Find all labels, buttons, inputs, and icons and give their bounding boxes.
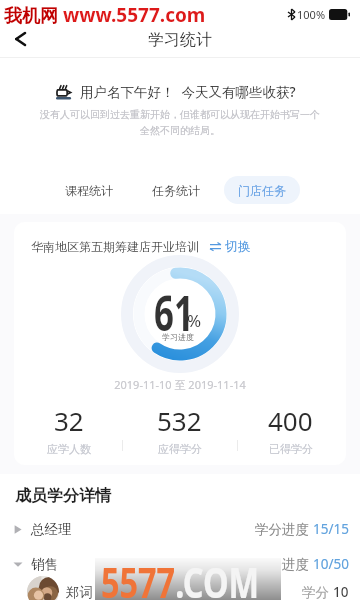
staticText: 32 xyxy=(54,403,84,438)
button[interactable]: 销售 xyxy=(0,551,360,577)
staticText: 没有人可以回到过去重新开始，但谁都可以从现在开始书写一个 全然不同的结局。 xyxy=(0,108,360,137)
staticText: 61 xyxy=(154,279,194,346)
staticText: 用户名下午好！ 今天又有哪些收获? xyxy=(80,83,296,101)
button[interactable]: 课程统计 xyxy=(65,176,113,204)
staticText: 学习进度 xyxy=(162,332,194,342)
staticText: 学分进度 xyxy=(255,520,313,538)
staticText: 任务统计 xyxy=(152,183,200,198)
button[interactable]: 郑词 xyxy=(0,575,360,600)
staticText: 郑词 xyxy=(66,584,93,600)
staticText: 已得学分 xyxy=(269,442,313,456)
button[interactable]: 400 xyxy=(235,403,346,456)
staticText: 2019-11-10 至 2019-11-14 xyxy=(14,377,346,392)
staticText: 成员学分详情 xyxy=(15,486,111,506)
staticText: 应得学分 xyxy=(158,442,202,456)
button[interactable]: Back xyxy=(4,28,38,57)
staticText: % xyxy=(187,309,202,332)
staticText: 我机网 xyxy=(4,3,63,28)
staticText: 15/15 xyxy=(313,520,349,538)
staticText: 学分进度 xyxy=(255,555,313,573)
button[interactable]: 门店任务 xyxy=(224,176,300,204)
staticText: 华南地区第五期筹建店开业培训 xyxy=(31,239,199,254)
button[interactable]: 532 xyxy=(124,403,235,456)
staticText: 总经理 xyxy=(31,521,72,538)
staticText: 学分 xyxy=(302,583,333,600)
staticText: 学习统计 xyxy=(148,30,212,50)
button[interactable]: 切换 xyxy=(210,238,251,254)
staticText: 销售 xyxy=(31,556,58,573)
staticText: 100% xyxy=(297,7,326,22)
staticText: 532 xyxy=(157,403,202,438)
staticText: .COM xyxy=(175,554,260,600)
button[interactable]: 32 xyxy=(14,403,124,456)
button[interactable]: 总经理 xyxy=(0,516,360,542)
button[interactable]: 任务统计 xyxy=(152,176,200,204)
staticText: 切换 xyxy=(225,238,251,254)
staticText: www.5577.com xyxy=(63,2,206,28)
staticText: 应学人数 xyxy=(47,442,91,456)
staticText: 10/50 xyxy=(313,555,349,573)
staticText: 课程统计 xyxy=(65,183,113,198)
staticText: 门店任务 xyxy=(238,183,286,198)
staticText: 400 xyxy=(268,403,313,438)
staticText: 10 xyxy=(333,583,349,600)
staticText: 5577 xyxy=(101,554,175,600)
